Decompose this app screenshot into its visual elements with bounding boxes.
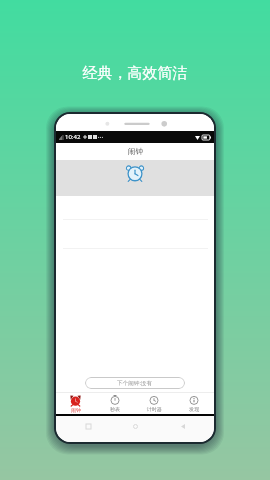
button[interactable]: 计时器: [134, 393, 174, 414]
button[interactable]: 下个闹钟:没有: [85, 377, 185, 389]
button[interactable]: 发现: [174, 393, 214, 414]
staticText: 10:42: [65, 133, 81, 141]
button[interactable]: Home: [112, 419, 159, 433]
button[interactable]: 秒表: [95, 393, 134, 414]
staticText: 发现: [189, 406, 199, 412]
button[interactable]: 闹钟: [56, 393, 95, 414]
staticText: 下个闹钟:没有: [117, 379, 153, 387]
staticText: 计时器: [147, 406, 162, 412]
staticText: 经典，高效简洁: [0, 64, 270, 83]
button[interactable]: Add alarm: [126, 164, 144, 182]
staticText: 闹钟: [128, 147, 143, 156]
button[interactable]: Back: [159, 419, 206, 433]
button[interactable]: Recents: [65, 419, 112, 433]
staticText: 闹钟: [71, 407, 81, 413]
staticText: 秒表: [110, 406, 120, 412]
